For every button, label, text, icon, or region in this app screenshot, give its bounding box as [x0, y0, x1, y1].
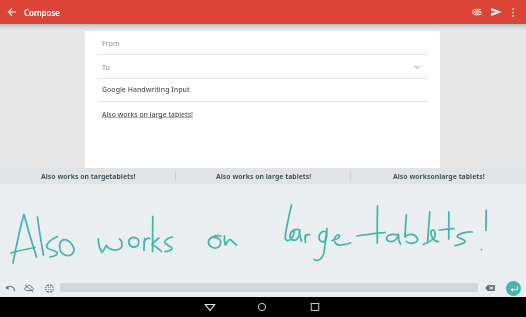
button[interactable]: Attach file	[466, 1, 488, 23]
staticText: Compose	[24, 7, 60, 18]
button[interactable]: Enter	[504, 279, 522, 297]
button[interactable]: Google Handwriting Input	[85, 79, 440, 101]
staticText: From	[102, 38, 120, 48]
staticText: Google Handwriting Input	[102, 85, 190, 95]
button[interactable]: Also works on targetablets!	[0, 168, 176, 184]
button[interactable]: Undo	[1, 279, 19, 297]
button[interactable]: Change language	[40, 279, 58, 297]
button[interactable]: Also works on large tablets!	[85, 102, 440, 126]
button[interactable]: From	[85, 31, 440, 54]
button[interactable]: Also works on large tablets!	[176, 168, 351, 184]
button[interactable]: Offline mode	[20, 279, 38, 297]
button[interactable]: Navigate up	[0, 0, 24, 24]
button[interactable]: Home	[252, 297, 272, 317]
button[interactable]: Recent apps	[305, 297, 325, 317]
button[interactable]: To	[85, 55, 440, 78]
button[interactable]: Delete	[481, 279, 499, 297]
button[interactable]: Also worksonlarge tablets!	[351, 168, 526, 184]
staticText: Also worksonlarge tablets!	[393, 172, 485, 181]
button[interactable]: Send	[485, 1, 507, 23]
staticText: Also works on targetablets!	[41, 172, 136, 181]
button[interactable]: More options	[503, 2, 523, 22]
staticText: To	[102, 62, 110, 72]
staticText: Also works on large tablets!	[216, 172, 312, 181]
staticText: Also works on large tablets!	[102, 110, 193, 119]
button[interactable]: Back	[200, 297, 220, 317]
